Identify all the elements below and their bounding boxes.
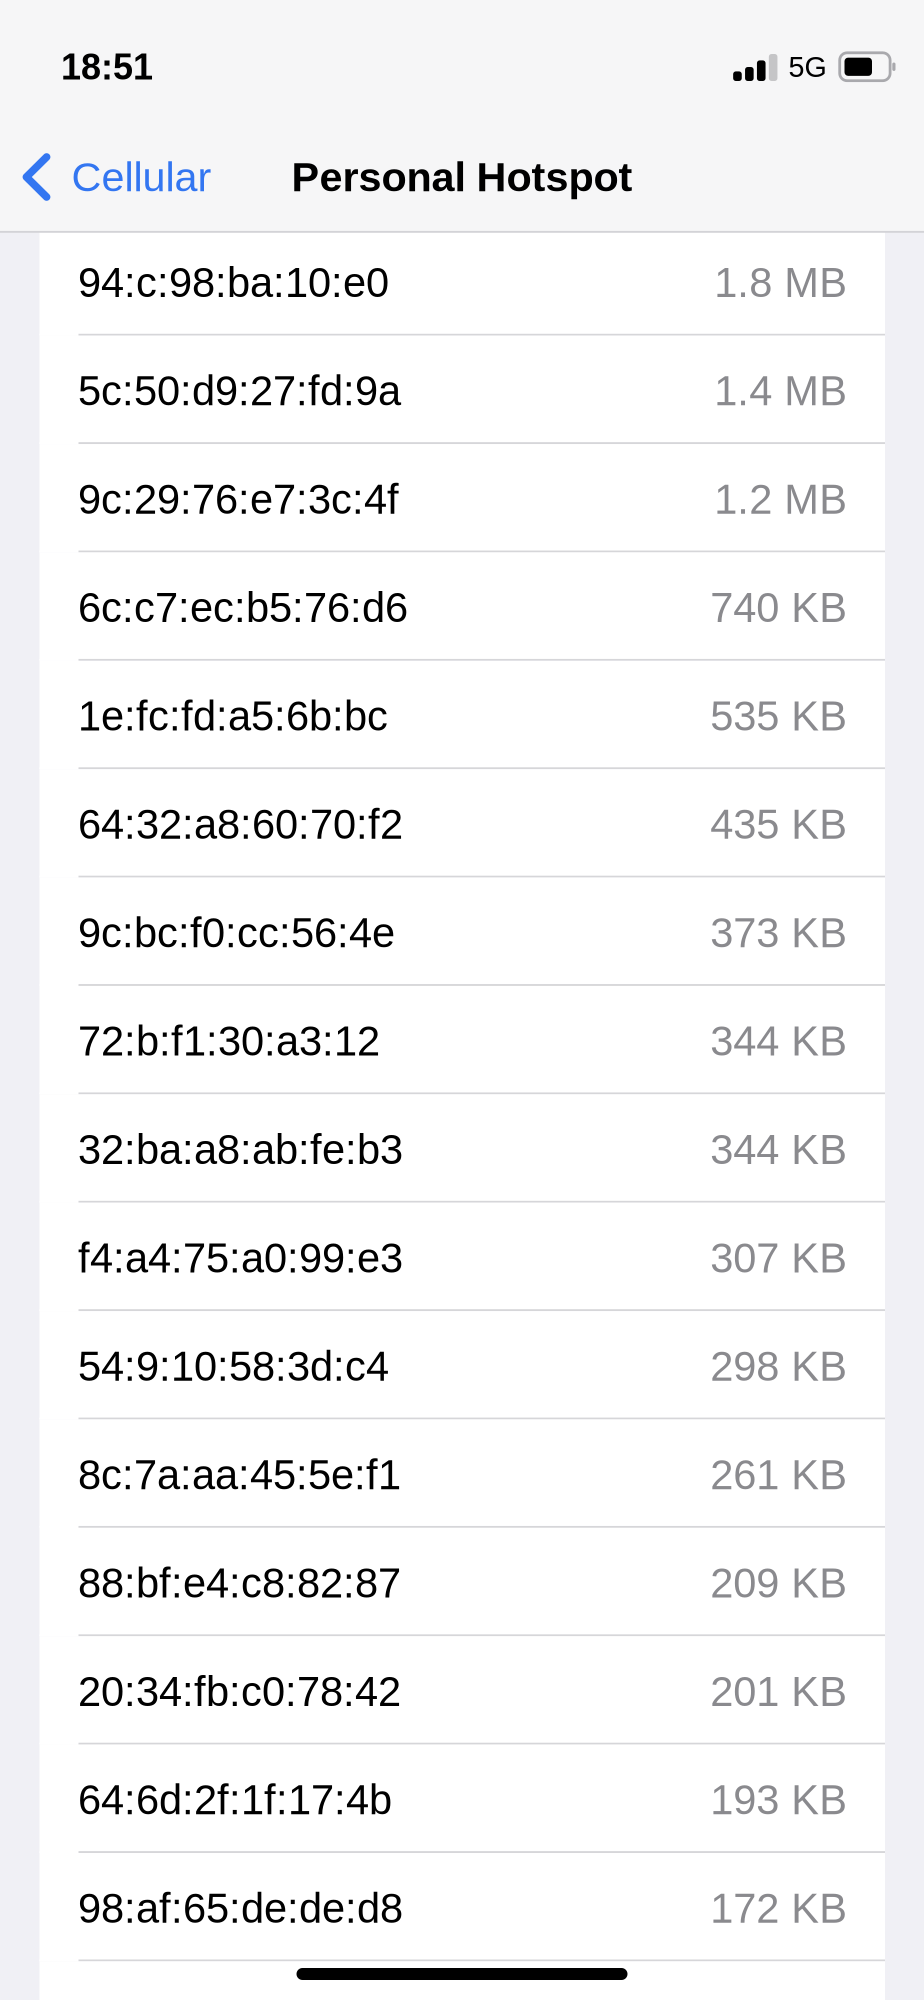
staticText: 32:ba:a8:ab:fe:b3 xyxy=(78,1126,403,1173)
staticText: 54:9:10:58:3d:c4 xyxy=(78,1343,389,1390)
button[interactable]: f4:a4:75:a0:99:e3 xyxy=(39,1203,885,1311)
button[interactable]: 98:af:65:de:de:d8 xyxy=(39,1853,885,1961)
staticText: 9c:bc:f0:cc:56:4e xyxy=(78,910,395,956)
button[interactable]: 6c:c7:ec:b5:76:d6 xyxy=(39,552,885,661)
staticText: 298 KB xyxy=(710,1343,847,1390)
button[interactable]: 9c:bc:f0:cc:56:4e xyxy=(39,878,885,986)
staticText: 172 KB xyxy=(710,1885,847,1931)
staticText: 64:6d:2f:1f:17:4b xyxy=(78,1777,392,1823)
staticText: 535 KB xyxy=(710,693,847,739)
staticText: 18:51 xyxy=(61,47,153,87)
staticText: Cellular xyxy=(72,154,212,200)
staticText: 740 KB xyxy=(710,584,847,631)
staticText: Personal Hotspot xyxy=(291,154,632,200)
button[interactable]: 94:c:98:ba:10:e0 xyxy=(39,227,885,336)
staticText: f4:a4:75:a0:99:e3 xyxy=(78,1235,403,1281)
button[interactable]: 54:9:10:58:3d:c4 xyxy=(39,1311,885,1419)
staticText: 201 KB xyxy=(710,1668,847,1715)
staticText: 1.8 MB xyxy=(714,259,847,306)
button[interactable]: 5c:50:d9:27:fd:9a xyxy=(39,336,885,444)
staticText: 1.2 MB xyxy=(714,476,847,523)
staticText: 9c:29:76:e7:3c:4f xyxy=(78,476,399,523)
button[interactable]: 9c:29:76:e7:3c:4f xyxy=(39,444,885,552)
staticText: 344 KB xyxy=(710,1126,847,1173)
staticText: 72:b:f1:30:a3:12 xyxy=(78,1018,380,1064)
staticText: 193 KB xyxy=(710,1777,847,1823)
button[interactable]: Cellular xyxy=(0,126,230,228)
button[interactable]: 1e:fc:fd:a5:6b:bc xyxy=(39,661,885,769)
staticText: 20:34:fb:c0:78:42 xyxy=(78,1668,401,1715)
staticText: 94:c:98:ba:10:e0 xyxy=(78,259,389,306)
staticText: 1.4 MB xyxy=(714,368,847,414)
staticText: 64:32:a8:60:70:f2 xyxy=(78,801,403,848)
staticText: 373 KB xyxy=(710,910,847,956)
staticText: 344 KB xyxy=(710,1018,847,1064)
staticText: 435 KB xyxy=(710,801,847,848)
staticText: 5c:50:d9:27:fd:9a xyxy=(78,368,401,414)
staticText: 307 KB xyxy=(710,1235,847,1281)
staticText: 8c:7a:aa:45:5e:f1 xyxy=(78,1451,401,1498)
staticText: 209 KB xyxy=(710,1560,847,1606)
staticText: 1e:fc:fd:a5:6b:bc xyxy=(78,693,388,739)
button[interactable]: 72:b:f1:30:a3:12 xyxy=(39,986,885,1094)
button[interactable]: 64:32:a8:60:70:f2 xyxy=(39,769,885,878)
staticText: 98:af:65:de:de:d8 xyxy=(78,1885,403,1931)
button[interactable]: 32:ba:a8:ab:fe:b3 xyxy=(39,1094,885,1203)
button[interactable]: 88:bf:e4:c8:82:87 xyxy=(39,1528,885,1636)
button[interactable]: 64:6d:2f:1f:17:4b xyxy=(39,1745,885,1853)
button[interactable]: 8c:7a:aa:45:5e:f1 xyxy=(39,1419,885,1528)
staticText: 88:bf:e4:c8:82:87 xyxy=(78,1560,401,1606)
button[interactable]: 20:34:fb:c0:78:42 xyxy=(39,1636,885,1745)
staticText: 261 KB xyxy=(710,1451,847,1498)
staticText: 6c:c7:ec:b5:76:d6 xyxy=(78,584,408,631)
staticText: 5G xyxy=(788,51,826,83)
